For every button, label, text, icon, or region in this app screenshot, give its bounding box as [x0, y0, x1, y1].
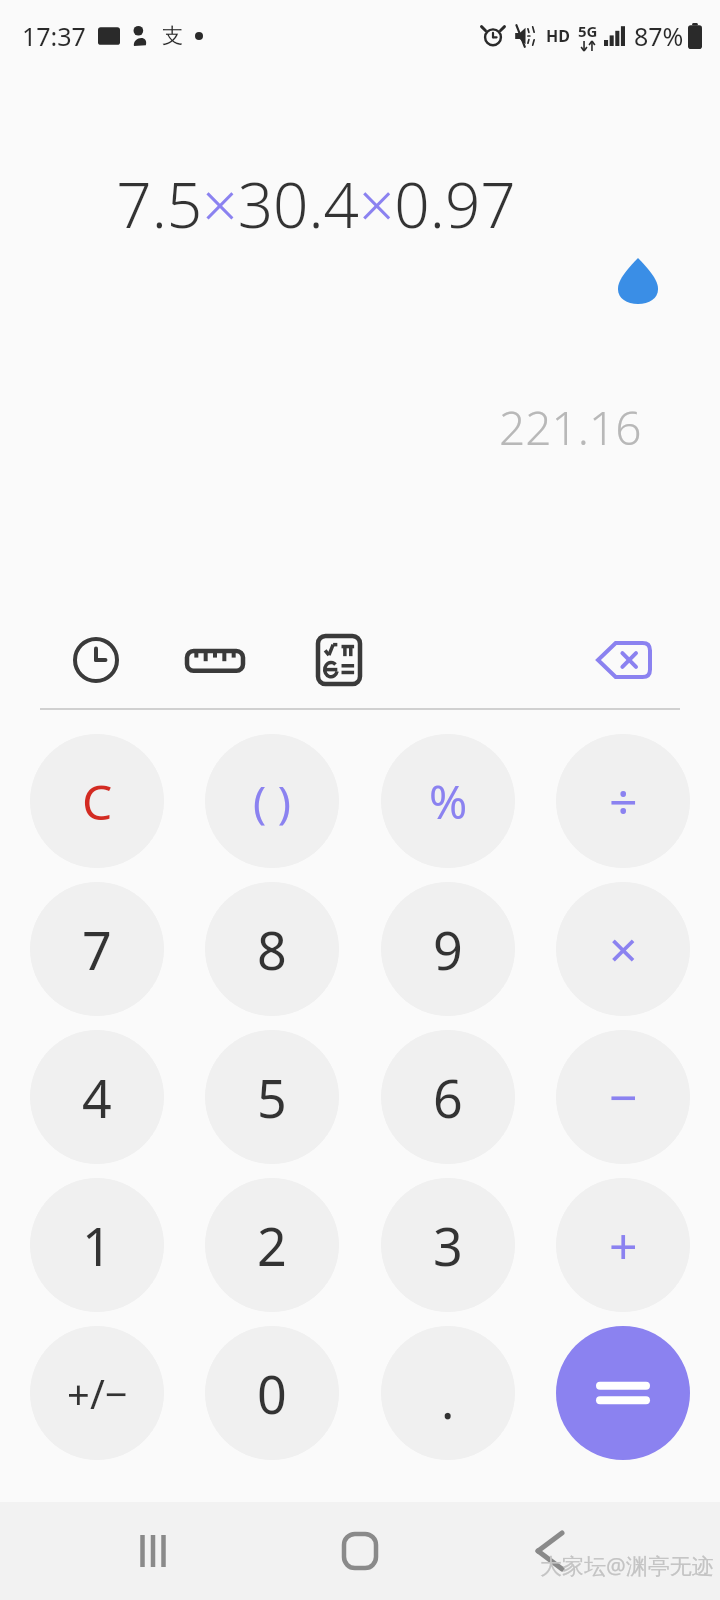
button[interactable]: 5 [205, 1030, 339, 1164]
button[interactable]: C [30, 734, 164, 868]
button[interactable]: 3 [381, 1178, 515, 1312]
button[interactable] [556, 1326, 690, 1460]
button[interactable]: 8 [205, 882, 339, 1016]
button[interactable]: % [381, 734, 515, 868]
staticText: +/− [67, 1366, 128, 1420]
staticText: 支 [162, 23, 183, 49]
staticText: . [441, 1366, 455, 1434]
staticText: 7.5×30.4×0.97 [116, 162, 516, 246]
staticText: 4 [82, 1062, 112, 1133]
button[interactable]: Unit converter [184, 629, 246, 691]
staticText: ÷ [609, 767, 638, 835]
button[interactable]: − [556, 1030, 690, 1164]
staticText: HD [546, 25, 570, 47]
staticText: + [609, 1211, 638, 1279]
button[interactable]: Recents [118, 1516, 188, 1586]
button[interactable]: × [556, 882, 690, 1016]
staticText: 87% [634, 19, 684, 53]
button[interactable]: +/− [30, 1326, 164, 1460]
staticText: 大家坛@渊亭无迹 [540, 1550, 714, 1580]
staticText: % [429, 770, 468, 833]
button[interactable]: 7 [30, 882, 164, 1016]
staticText: 8 [257, 914, 287, 985]
staticText: 7 [82, 914, 112, 985]
staticText: ( ) [253, 771, 291, 831]
button[interactable]: Home [325, 1516, 395, 1586]
staticText: 5G [578, 21, 598, 41]
button[interactable]: Backspace [590, 626, 658, 694]
button[interactable]: 0 [205, 1326, 339, 1460]
staticText: 0 [257, 1358, 287, 1429]
button[interactable]: + [556, 1178, 690, 1312]
staticText: × [609, 915, 638, 983]
staticText: C [82, 769, 113, 834]
button[interactable]: 1 [30, 1178, 164, 1312]
staticText: 17:37 [22, 19, 86, 53]
staticText: 2 [257, 1210, 287, 1281]
staticText: 9 [433, 914, 463, 985]
button[interactable]: ÷ [556, 734, 690, 868]
button[interactable]: 9 [381, 882, 515, 1016]
button[interactable]: 6 [381, 1030, 515, 1164]
button[interactable]: 2 [205, 1178, 339, 1312]
staticText: 5 [257, 1062, 287, 1133]
staticText: − [609, 1063, 638, 1131]
button[interactable]: ( ) [205, 734, 339, 868]
button[interactable]: 4 [30, 1030, 164, 1164]
button[interactable]: . [381, 1326, 515, 1460]
button[interactable]: Scientific calculator [308, 629, 370, 691]
button[interactable]: Back [515, 1516, 585, 1586]
staticText: 6 [433, 1062, 463, 1133]
staticText: 1 [82, 1210, 112, 1281]
button[interactable]: History [68, 632, 124, 688]
staticText: 3 [433, 1210, 463, 1281]
staticText: 221.16 [499, 396, 642, 459]
